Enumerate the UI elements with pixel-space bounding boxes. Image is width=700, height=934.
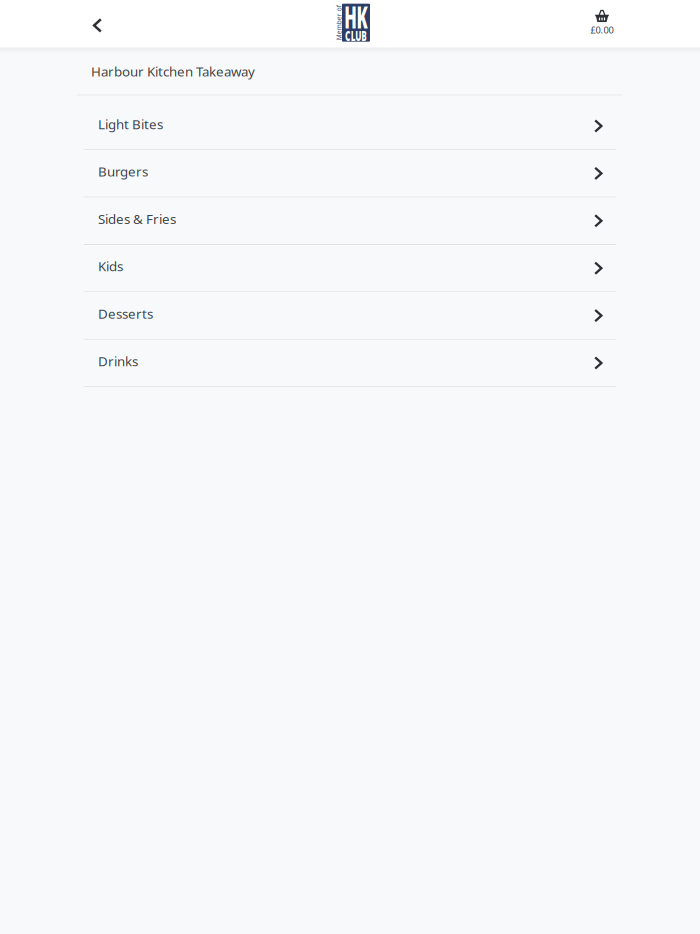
staticText: Desserts [98,304,153,323]
staticText: £0.00 [590,24,613,36]
button[interactable]: Light Bites [84,103,616,149]
button[interactable]: Desserts [84,293,616,338]
staticText: Burgers [98,162,148,180]
staticText: Sides & Fries [98,210,176,228]
staticText: CLUB [336,25,375,45]
button[interactable]: Back [75,3,119,47]
staticText: Harbour Kitchen Takeaway [91,62,255,80]
staticText: Kids [98,257,123,275]
staticText: Drinks [98,352,138,370]
button[interactable]: Drinks [84,340,616,386]
button[interactable]: Burgers [84,151,616,196]
button[interactable]: Basket total £0.00 [575,1,629,45]
staticText: Member of [321,18,356,27]
button[interactable]: Sides & Fries [84,198,616,243]
button[interactable]: Kids [84,246,616,291]
staticText: Light Bites [98,115,163,133]
staticText: HK [335,0,377,37]
